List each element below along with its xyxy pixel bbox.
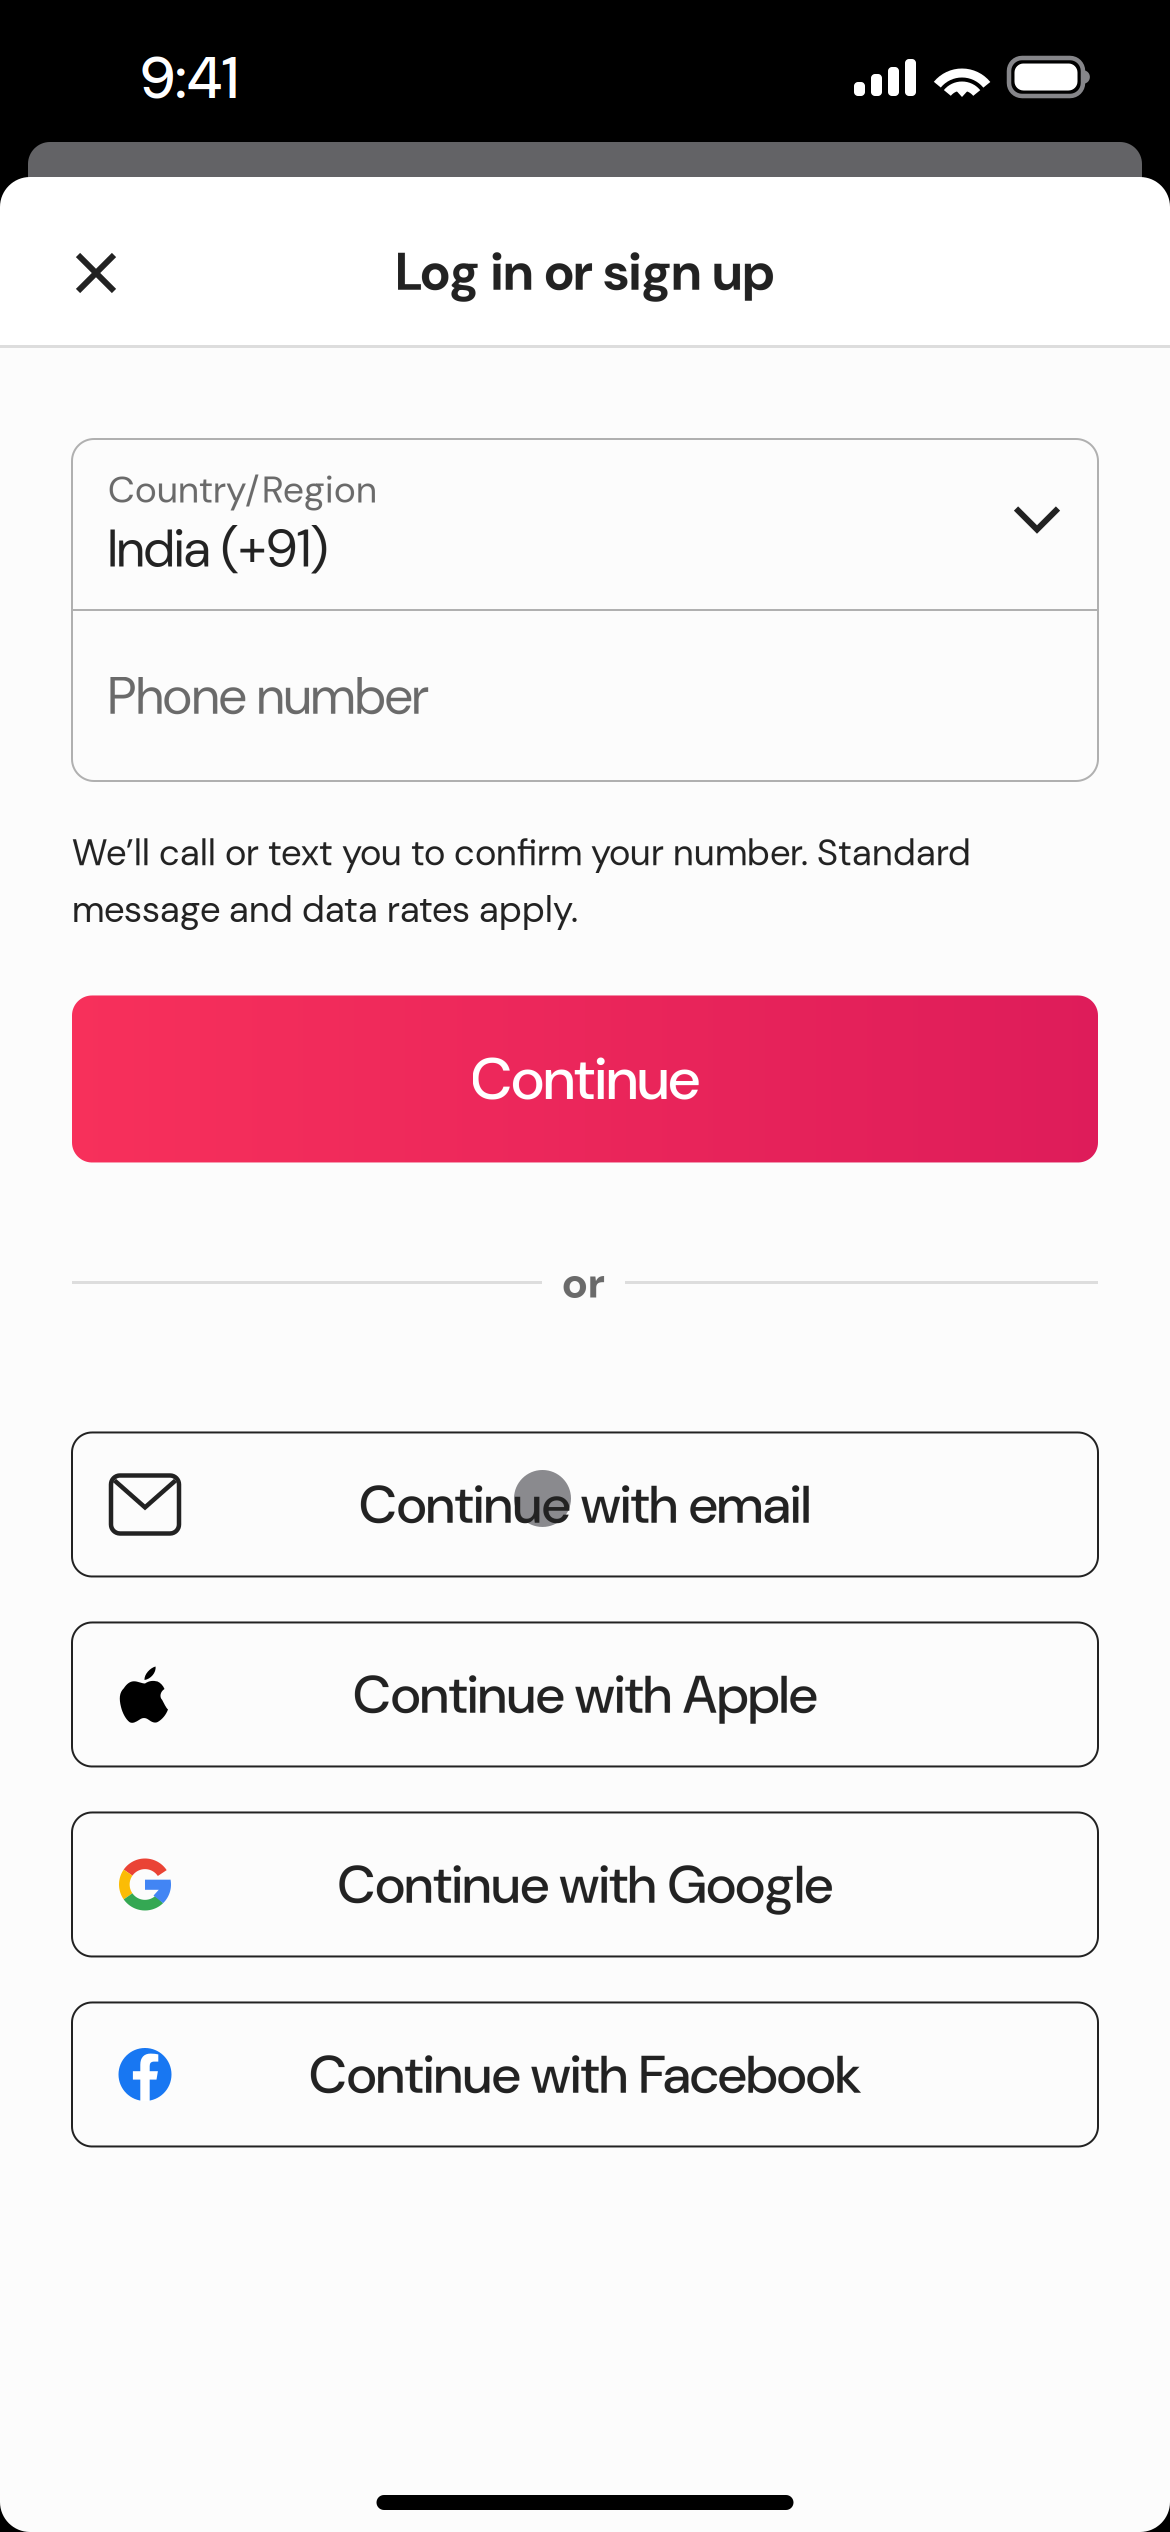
staticText: Continue	[470, 1041, 699, 1117]
button[interactable]: Phone number	[72, 611, 1098, 781]
button[interactable]: Country/Region	[72, 439, 1098, 609]
staticText: Continue with Apple	[353, 1660, 817, 1729]
button[interactable]: Continue with email	[72, 1432, 1098, 1576]
staticText: Continue with Facebook	[309, 2040, 861, 2109]
button[interactable]: Continue with Facebook	[72, 2002, 1098, 2146]
staticText: or	[562, 1254, 605, 1311]
button[interactable]: Close	[44, 221, 148, 325]
staticText: Country/Region	[108, 465, 377, 514]
staticText: 9:41	[141, 40, 238, 116]
staticText: We’ll call or text you to confirm your n…	[72, 829, 971, 933]
button[interactable]: Continue with Google	[72, 1812, 1098, 1956]
staticText: Continue with email	[359, 1470, 811, 1539]
button[interactable]: Continue with Apple	[72, 1622, 1098, 1766]
staticText: Phone number	[108, 662, 428, 730]
staticText: Continue with Google	[337, 1850, 832, 1919]
staticText: India (+91)	[108, 515, 328, 583]
button[interactable]: Continue	[72, 995, 1098, 1162]
staticText: Log in or sign up	[395, 238, 774, 306]
